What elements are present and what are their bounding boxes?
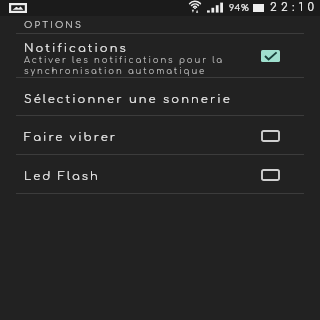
other: Signal: [207, 2, 224, 14]
staticText: 94%: [229, 3, 250, 13]
button[interactable]: Led Flash: [0, 154, 320, 193]
staticText: 22:10: [270, 1, 319, 14]
other: Capture d'écran: [9, 3, 27, 13]
button[interactable]: Notifications: [0, 33, 320, 77]
staticText: Led Flash: [24, 170, 100, 183]
staticText: Activer les notifications pour la synchr…: [24, 56, 225, 76]
other: Wi-Fi: [187, 1, 203, 14]
staticText: Sélectionner une sonnerie: [24, 93, 232, 106]
button[interactable]: Désactivé: [257, 125, 283, 145]
staticText: Notifications: [24, 42, 128, 55]
button[interactable]: Faire vibrer: [0, 115, 320, 154]
button[interactable]: Sélectionner une sonnerie: [0, 77, 320, 115]
button[interactable]: Désactivé: [257, 164, 283, 184]
staticText: OPTIONS: [24, 20, 84, 30]
button[interactable]: Activé: [257, 45, 283, 65]
staticText: Faire vibrer: [24, 131, 118, 144]
